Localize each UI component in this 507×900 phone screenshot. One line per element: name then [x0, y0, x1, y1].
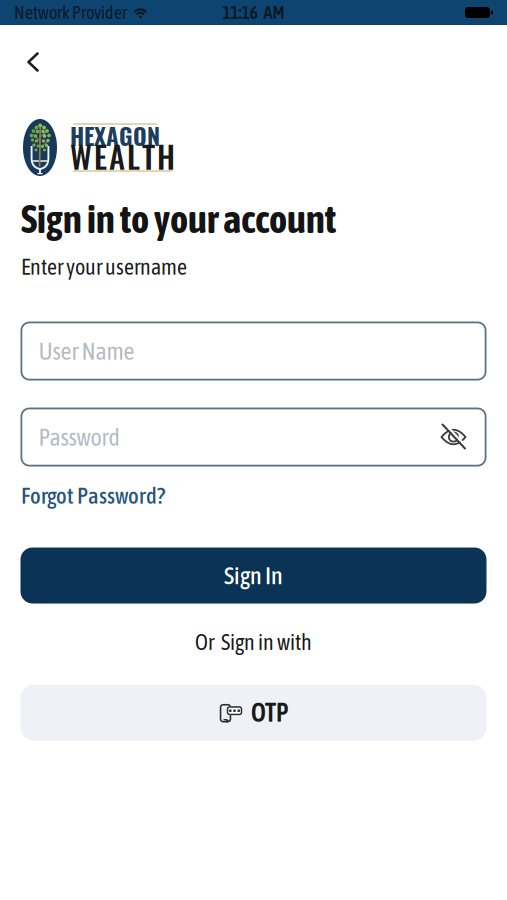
staticText: 11:16 AM: [222, 2, 284, 23]
staticText: HEXAGON: [70, 118, 160, 153]
button[interactable]: Password text field: [20, 407, 486, 466]
staticText: Or Sign in with: [195, 629, 312, 655]
button[interactable]: Show password: [440, 427, 466, 447]
staticText: Network Provider: [14, 2, 127, 23]
staticText: Sign In: [224, 562, 283, 589]
button[interactable]: Back: [0, 25, 39, 72]
staticText: Password: [38, 423, 119, 451]
staticText: OTP: [251, 698, 288, 727]
staticText: User Name: [38, 337, 134, 365]
button[interactable]: Forgot Password?: [0, 482, 165, 508]
staticText: Enter your username: [21, 254, 187, 279]
staticText: Sign in to your account: [21, 197, 336, 241]
staticText: W E A L T H: [70, 133, 175, 179]
button[interactable]: Sign In: [20, 547, 486, 603]
button[interactable]: User Name text field: [20, 321, 486, 380]
button[interactable]: OTP: [20, 685, 486, 741]
staticText: Forgot Password?: [21, 482, 165, 508]
